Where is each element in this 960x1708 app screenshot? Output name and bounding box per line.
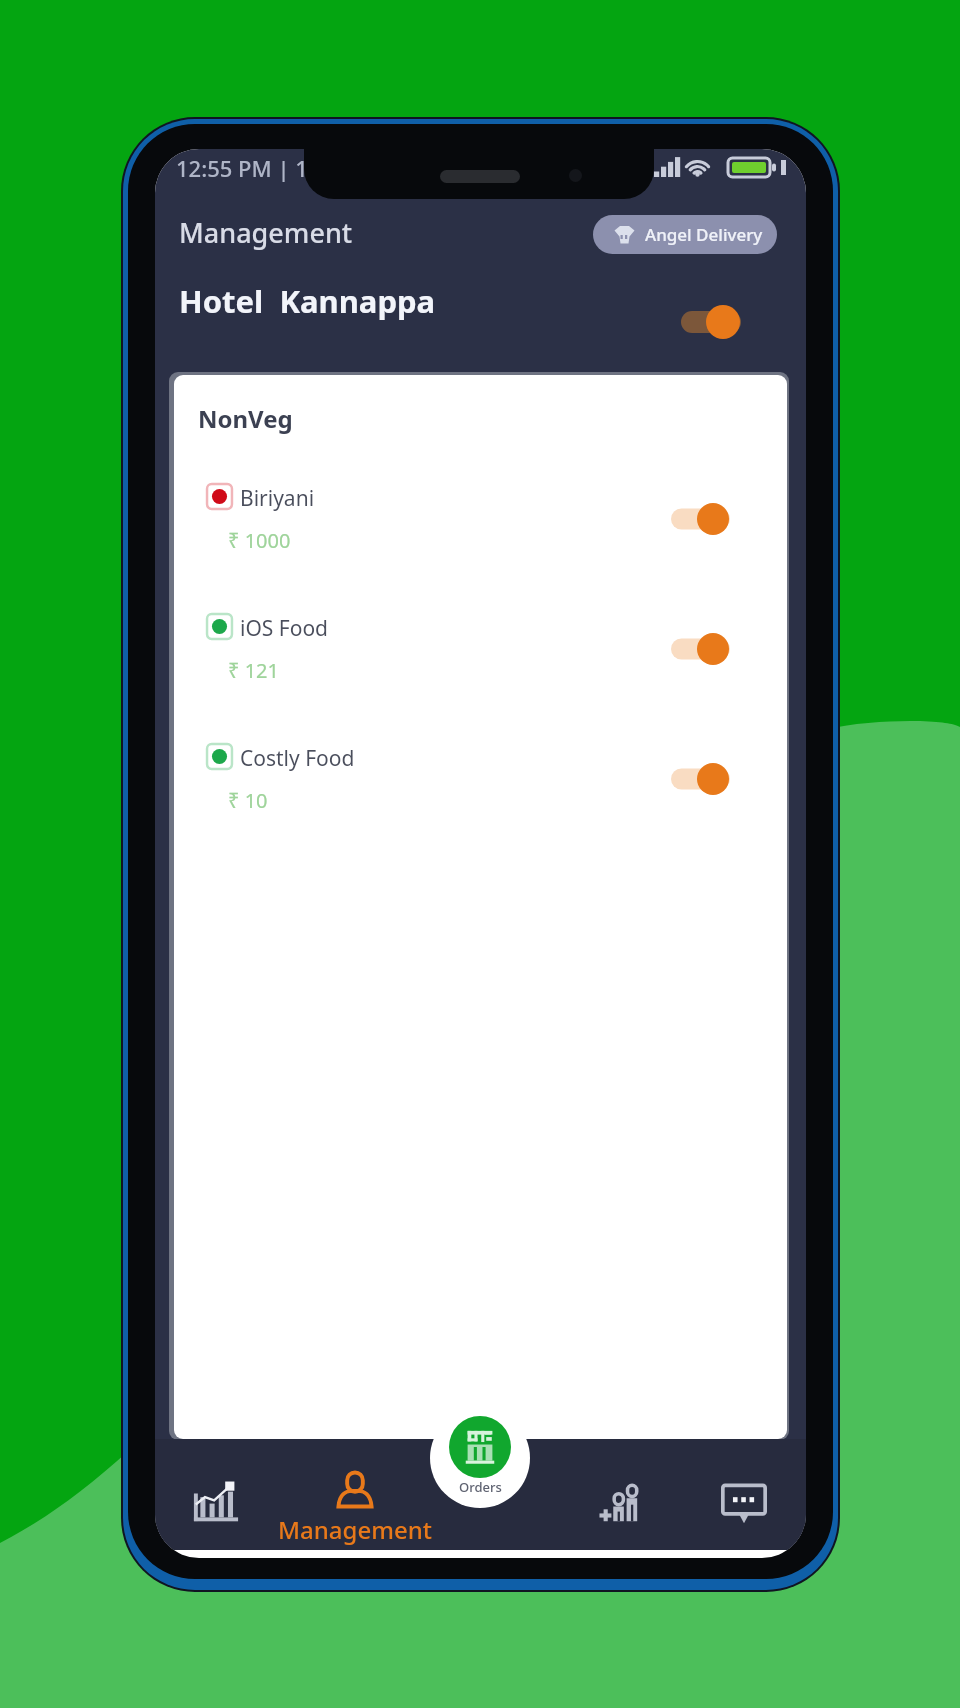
button[interactable]: Toggle	[681, 304, 741, 340]
staticText: Angel Delivery	[645, 223, 763, 246]
staticText: Management	[179, 214, 353, 251]
button[interactable]: Add staff	[576, 1478, 668, 1524]
button[interactable]: Analytics	[170, 1476, 262, 1522]
button[interactable]: Messages	[698, 1479, 790, 1525]
button[interactable]: Angel Delivery	[593, 215, 777, 254]
staticText: NonVeg	[198, 402, 293, 435]
button[interactable]: Toggle	[671, 502, 730, 536]
button[interactable]: iOS Food	[174, 604, 787, 704]
staticText: Costly Food	[240, 744, 355, 773]
button[interactable]: Costly Food	[174, 734, 787, 834]
staticText: ₹ 10	[228, 787, 268, 814]
button[interactable]: Management	[263, 1466, 447, 1546]
button[interactable]: Biriyani	[174, 474, 787, 574]
button[interactable]: Toggle	[671, 632, 730, 666]
staticText: ₹ 1000	[228, 527, 291, 554]
staticText: Hotel Kannappa	[179, 280, 436, 322]
staticText: Orders	[459, 1478, 502, 1496]
staticText: iOS Food	[240, 614, 329, 643]
staticText: Biriyani	[240, 484, 315, 513]
staticText: ₹ 121	[228, 657, 279, 684]
button[interactable]: Toggle	[671, 762, 730, 796]
staticText: 12:55 PM | 12 Sep	[176, 153, 365, 183]
staticText: Management	[278, 1513, 432, 1546]
button[interactable]: Orders	[430, 1408, 530, 1508]
